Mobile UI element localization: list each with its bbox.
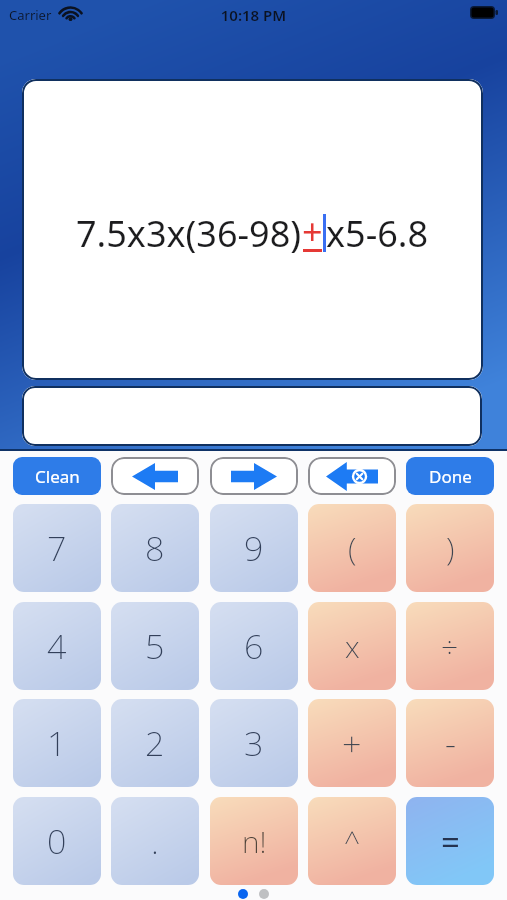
button[interactable]: 1 — [13, 699, 101, 787]
staticText: Carrier — [9, 6, 52, 24]
button[interactable]: + — [308, 699, 396, 787]
button[interactable]: 4 — [13, 602, 101, 690]
staticText: Clean — [35, 465, 80, 488]
staticText: ( — [348, 526, 357, 570]
staticText: 6 — [244, 623, 264, 669]
button[interactable]: 9 — [210, 504, 298, 592]
staticText: = — [441, 819, 460, 864]
button[interactable]: Clean — [13, 457, 101, 495]
button[interactable]: n! — [210, 797, 298, 885]
staticText: 3 — [244, 720, 264, 766]
button[interactable]: 7.5x3x(36-98) — [22, 79, 483, 380]
staticText: x5-6.8 — [326, 209, 429, 258]
staticText: 8 — [145, 525, 165, 571]
button[interactable]: = — [406, 797, 494, 885]
staticText: 2 — [145, 720, 165, 766]
button[interactable]: - — [406, 699, 494, 787]
staticText: 10:18 PM — [0, 5, 507, 25]
staticText: ^ — [344, 822, 360, 860]
button[interactable]: ^ — [308, 797, 396, 885]
staticText: 4 — [47, 623, 67, 669]
button[interactable]: ) — [406, 504, 494, 592]
button[interactable]: 2 — [111, 699, 199, 787]
button[interactable]: ( — [308, 504, 396, 592]
button[interactable]: x — [308, 602, 396, 690]
button[interactable] — [22, 386, 482, 446]
staticText: ÷ — [441, 626, 459, 667]
staticText: n! — [242, 821, 267, 862]
staticText: 7.5x3x(36-98) — [76, 209, 302, 258]
button[interactable]: 5 — [111, 602, 199, 690]
staticText: + — [342, 720, 362, 766]
staticText: 9 — [244, 525, 264, 571]
button[interactable] — [210, 457, 298, 495]
staticText: - — [445, 720, 456, 766]
button[interactable]: 6 — [210, 602, 298, 690]
button[interactable]: 3 — [210, 699, 298, 787]
staticText: 1 — [47, 720, 67, 766]
staticText: ) — [446, 526, 455, 570]
staticText: Done — [429, 465, 472, 488]
button[interactable]: 8 — [111, 504, 199, 592]
staticText: 5 — [145, 623, 165, 669]
button[interactable]: ÷ — [406, 602, 494, 690]
button[interactable]: Done — [406, 457, 494, 495]
staticText: + — [302, 207, 323, 256]
staticText: x — [345, 626, 360, 667]
button[interactable] — [308, 457, 396, 495]
staticText: 7 — [47, 525, 67, 571]
button[interactable]: . — [111, 797, 199, 885]
button[interactable]: 7 — [13, 504, 101, 592]
button[interactable] — [111, 457, 199, 495]
staticText: 0 — [47, 818, 67, 864]
button[interactable]: 0 — [13, 797, 101, 885]
staticText: . — [151, 818, 159, 864]
